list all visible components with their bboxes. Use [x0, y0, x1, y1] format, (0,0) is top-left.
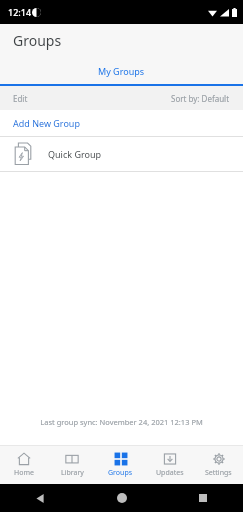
button[interactable]: My Groups — [0, 57, 243, 84]
staticText: Groups — [108, 468, 133, 478]
button[interactable]: Home — [0, 446, 48, 484]
button[interactable]: Library — [48, 446, 96, 484]
staticText: 12:14 — [8, 6, 32, 18]
button[interactable]: Groups — [96, 446, 145, 484]
button[interactable]: Settings — [194, 446, 243, 484]
staticText: Add New Group — [13, 117, 80, 129]
other: Home — [117, 493, 127, 503]
staticText: Last group sync: November 24, 2021 12:13… — [40, 417, 203, 427]
other: Back — [36, 494, 45, 503]
button[interactable]: Add New Group — [0, 110, 243, 136]
staticText: Edit — [13, 93, 28, 104]
staticText: Updates — [156, 468, 184, 478]
button[interactable]: Updates — [145, 446, 194, 484]
staticText: My Groups — [98, 65, 145, 77]
staticText: Library — [61, 468, 84, 478]
button[interactable]: Sort by: Default — [158, 86, 243, 110]
staticText: Home — [14, 468, 34, 478]
staticText: Quick Group — [48, 148, 102, 160]
staticText: Settings — [205, 468, 232, 478]
button[interactable]: Quick Group — [0, 137, 243, 171]
staticText: Groups — [13, 31, 62, 50]
staticText: Sort by: Default — [171, 93, 230, 104]
button[interactable]: Edit — [0, 86, 41, 110]
